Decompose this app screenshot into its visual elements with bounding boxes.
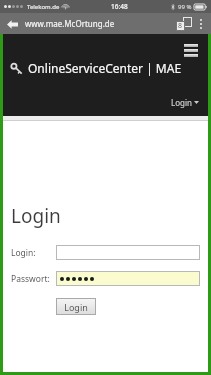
staticText: Login (64, 301, 88, 313)
button[interactable]: Back (5, 17, 19, 31)
staticText: OnlineServiceCenter | MAE (28, 60, 182, 76)
button[interactable]: Login (171, 97, 199, 108)
staticText: Login: (11, 247, 36, 259)
button[interactable]: Menu (182, 41, 200, 59)
staticText: 99 % (178, 3, 192, 11)
staticText: Login (11, 203, 61, 229)
button[interactable]: More options (196, 16, 206, 32)
staticText: 8 (178, 21, 183, 31)
button[interactable]: Tabs (176, 16, 192, 32)
button[interactable] (56, 245, 200, 260)
staticText: Telekom.de (27, 3, 60, 11)
staticText: www.mae.McOrtung.de (25, 18, 115, 29)
button[interactable]: Login (56, 298, 96, 315)
staticText: Passwort: (11, 273, 50, 285)
staticText: Login (171, 97, 192, 108)
staticText: 16:48 (111, 2, 128, 11)
button[interactable] (56, 271, 200, 286)
